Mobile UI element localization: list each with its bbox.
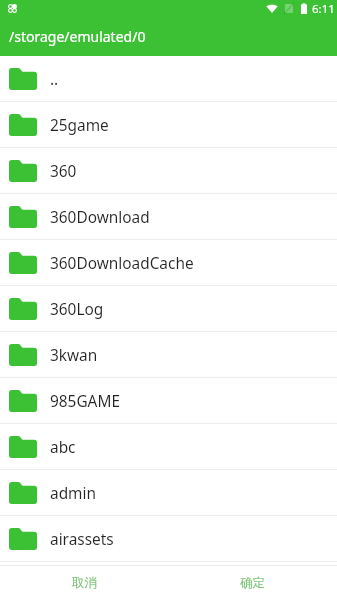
staticText: 360DownloadCache xyxy=(50,253,194,274)
staticText: airassets xyxy=(50,529,114,550)
button[interactable]: 360DownloadCache xyxy=(0,240,337,286)
button[interactable]: airassets xyxy=(0,516,337,562)
button[interactable]: 确定 xyxy=(168,566,337,600)
button[interactable]: 取消 xyxy=(0,566,168,600)
staticText: 确定 xyxy=(240,575,265,591)
staticText: /storage/emulated/0 xyxy=(9,27,146,46)
staticText: 3kwan xyxy=(50,345,98,366)
button[interactable]: 360Download xyxy=(0,194,337,240)
staticText: 360Log xyxy=(50,299,104,320)
button[interactable]: admin xyxy=(0,470,337,516)
staticText: 360Download xyxy=(50,207,150,228)
button[interactable]: abc xyxy=(0,424,337,470)
staticText: 25game xyxy=(50,115,109,136)
button[interactable]: .. xyxy=(0,56,337,102)
staticText: abc xyxy=(50,437,76,458)
staticText: 取消 xyxy=(72,575,97,591)
button[interactable]: 985GAME xyxy=(0,378,337,424)
staticText: .. xyxy=(50,69,59,90)
staticText: 360 xyxy=(50,161,77,182)
staticText: 6:11 xyxy=(312,1,335,17)
staticText: admin xyxy=(50,483,96,504)
staticText: 985GAME xyxy=(50,391,120,412)
button[interactable]: 360 xyxy=(0,148,337,194)
button[interactable]: 3kwan xyxy=(0,332,337,378)
button[interactable]: 25game xyxy=(0,102,337,148)
other: Notifications xyxy=(8,4,17,13)
button[interactable]: 360Log xyxy=(0,286,337,332)
